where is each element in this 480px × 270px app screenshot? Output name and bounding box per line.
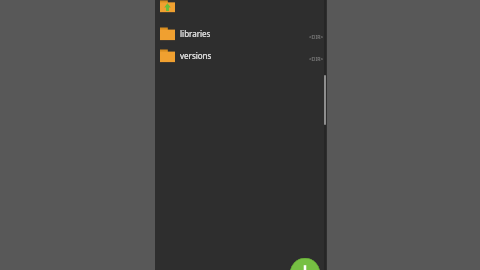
- staticText: <DIR>: [309, 34, 324, 41]
- staticText: libraries: [180, 28, 211, 39]
- button[interactable]: [155, 0, 327, 14]
- staticText: versions: [180, 50, 212, 61]
- staticText: <DIR>: [309, 56, 324, 63]
- button[interactable]: Add: [290, 258, 320, 270]
- button[interactable]: libraries: [155, 22, 327, 44]
- button[interactable]: versions: [155, 44, 327, 66]
